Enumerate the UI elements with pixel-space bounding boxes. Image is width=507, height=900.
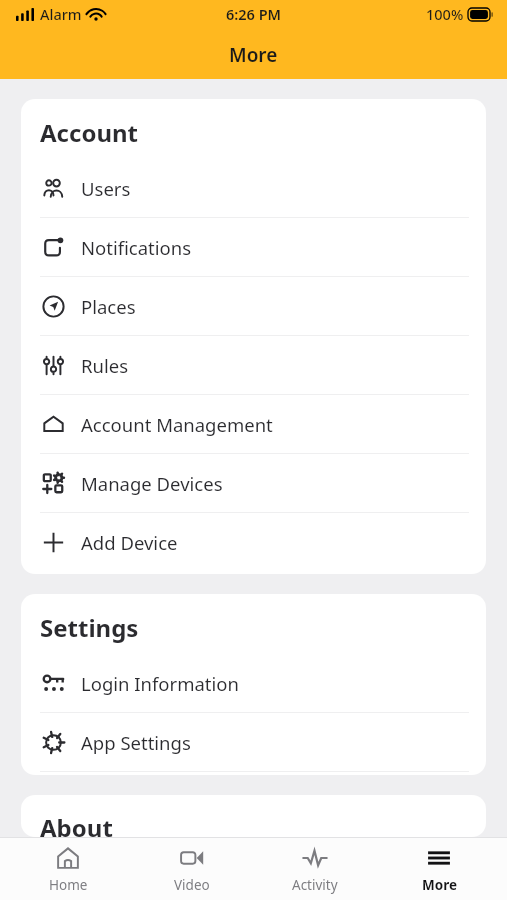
staticText: About xyxy=(40,811,113,837)
button[interactable]: Login Information xyxy=(21,654,486,713)
staticText: Notifications xyxy=(81,235,192,260)
staticText: More xyxy=(229,42,278,68)
button[interactable]: Activity xyxy=(260,841,370,898)
button[interactable]: App Settings xyxy=(21,713,486,772)
staticText: Home xyxy=(49,876,88,894)
staticText: 6:26 PM xyxy=(226,4,282,24)
button[interactable]: Account Management xyxy=(21,395,486,454)
staticText: App Settings xyxy=(81,730,191,755)
button[interactable]: Rules xyxy=(21,336,486,395)
staticText: 100% xyxy=(426,4,464,24)
button[interactable]: Places xyxy=(21,277,486,336)
button[interactable]: Add Device xyxy=(21,513,486,571)
staticText: Video xyxy=(174,876,210,894)
button[interactable]: More xyxy=(384,841,494,898)
button[interactable]: Notifications xyxy=(21,218,486,277)
staticText: Users xyxy=(81,176,131,201)
button[interactable]: Users xyxy=(21,159,486,218)
button[interactable]: Home xyxy=(13,841,123,898)
staticText: Add Device xyxy=(81,530,178,555)
staticText: Alarm xyxy=(40,4,82,24)
button[interactable]: Video xyxy=(137,841,247,898)
staticText: Settings xyxy=(40,611,139,644)
staticText: Login Information xyxy=(81,671,239,696)
staticText: More xyxy=(422,876,457,894)
staticText: Activity xyxy=(292,876,338,894)
button[interactable]: Manage Devices xyxy=(21,454,486,513)
staticText: Rules xyxy=(81,353,129,378)
staticText: Manage Devices xyxy=(81,471,223,496)
staticText: Account Management xyxy=(81,412,273,437)
staticText: Account xyxy=(40,116,138,149)
staticText: Places xyxy=(81,294,136,319)
